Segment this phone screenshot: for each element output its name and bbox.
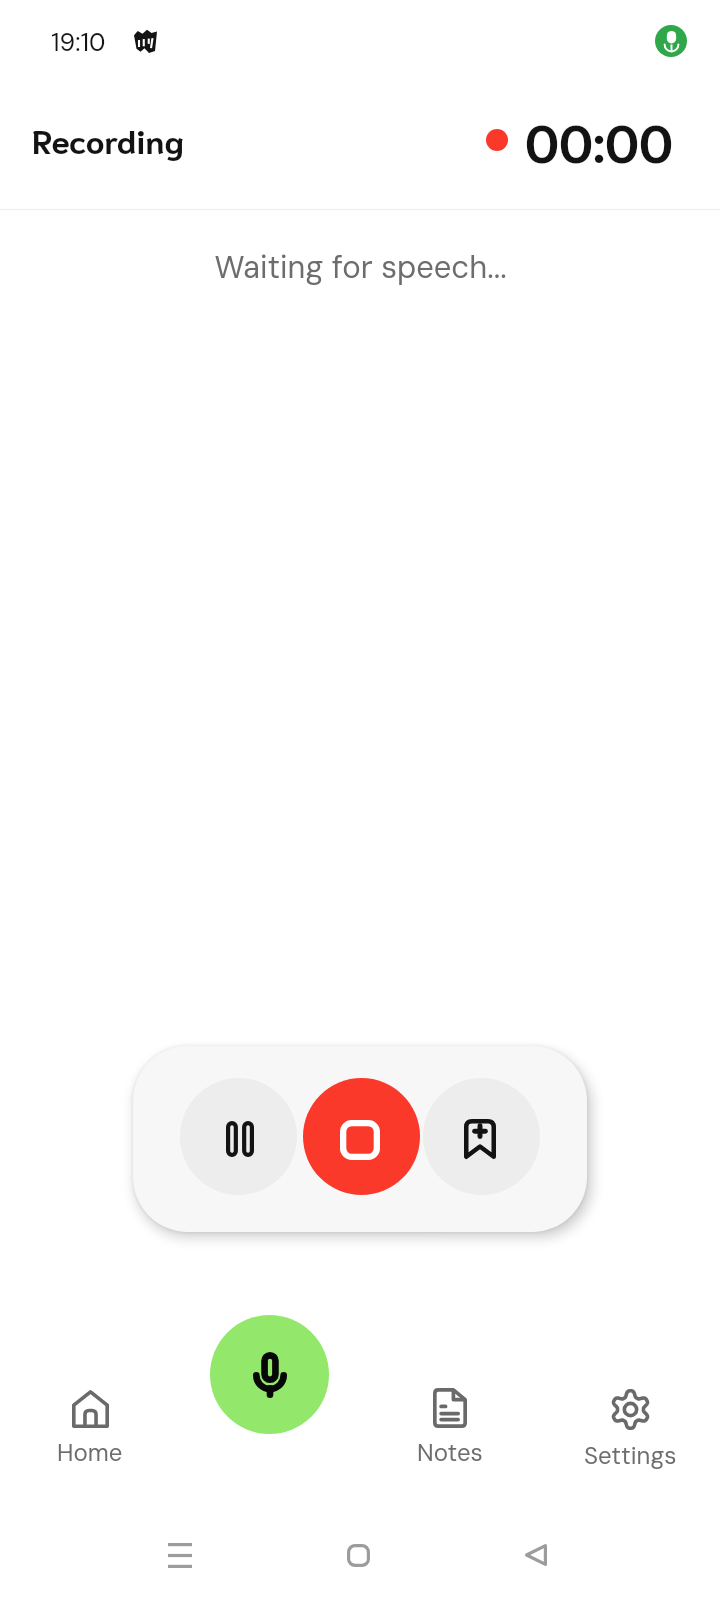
staticText: Home [57, 1437, 123, 1468]
staticText: Recording [32, 118, 184, 161]
button[interactable]: Stop recording [303, 1078, 420, 1195]
button[interactable]: Settings [540, 1386, 720, 1473]
staticText: 19:10 [51, 26, 106, 59]
staticText: 00:00 [525, 106, 674, 174]
staticText: Waiting for speech... [214, 247, 507, 287]
button[interactable]: Start recording [210, 1315, 329, 1434]
staticText: Notes [417, 1437, 483, 1468]
button[interactable]: Notes [360, 1386, 540, 1470]
staticText: Settings [584, 1440, 677, 1471]
button[interactable]: Add bookmark [423, 1078, 540, 1195]
other: Recording in progress [655, 25, 687, 57]
button[interactable]: Home [0, 1388, 180, 1470]
button[interactable]: Pause recording [180, 1078, 297, 1195]
